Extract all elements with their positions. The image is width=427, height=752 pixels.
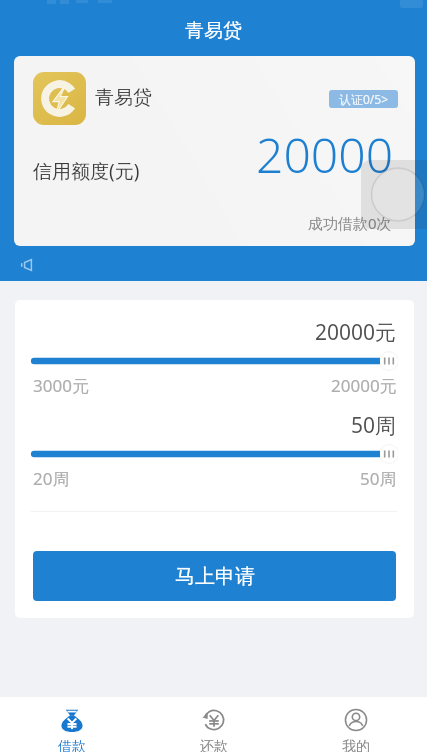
staticText: 青易贷 <box>185 19 242 43</box>
staticText: 借款 <box>58 738 86 752</box>
staticText: 信用额度(元) <box>33 158 140 184</box>
staticText: 认证0/5> <box>339 91 389 107</box>
staticText: 我的 <box>342 738 370 752</box>
staticText: 20000元 <box>331 374 397 394</box>
button[interactable]: 还款 <box>143 697 285 752</box>
staticText: 还款 <box>200 738 228 752</box>
button[interactable]: Assistive touch <box>361 160 427 229</box>
button[interactable]: 我的 <box>285 697 427 752</box>
staticText: 马上申请 <box>175 564 255 589</box>
button[interactable]: 认证0/5> <box>329 90 398 108</box>
button[interactable]: Announcements <box>17 256 35 274</box>
staticText: 50周 <box>351 411 397 439</box>
staticText: 20000元 <box>315 318 397 346</box>
staticText: 50周 <box>360 467 397 487</box>
staticText: 3000元 <box>33 374 89 394</box>
staticText: 青易贷 <box>95 86 152 110</box>
button[interactable]: 借款 <box>0 697 143 752</box>
button[interactable]: 马上申请 <box>33 551 396 601</box>
button[interactable] <box>380 351 398 371</box>
button[interactable] <box>380 444 398 464</box>
staticText: 成功借款0次 <box>308 213 392 233</box>
staticText: 20周 <box>33 467 70 487</box>
staticText: 20000 <box>256 122 394 187</box>
